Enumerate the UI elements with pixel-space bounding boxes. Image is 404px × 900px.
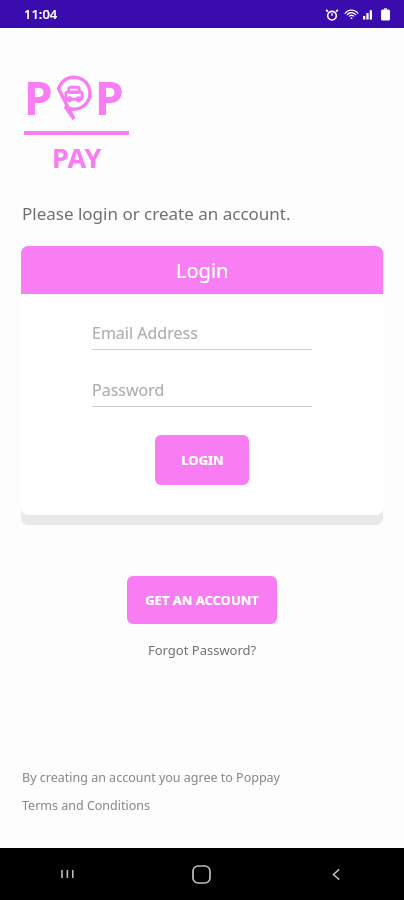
staticText: P — [95, 66, 124, 129]
button[interactable]: Forgot Password? — [140, 637, 265, 663]
staticText: P — [24, 66, 53, 129]
staticText: Terms and Conditions — [22, 797, 151, 814]
staticText: By creating an account you agree to Popp… — [22, 769, 280, 786]
staticText: 11:04 — [24, 5, 58, 23]
staticText: GET AN ACCOUNT — [145, 591, 259, 609]
staticText: Login — [176, 257, 229, 284]
button[interactable]: Recent apps — [0, 848, 134, 900]
button[interactable]: GET AN ACCOUNT — [127, 576, 277, 624]
button[interactable]: Email Address — [92, 322, 312, 350]
staticText: Email Address — [92, 322, 198, 344]
button[interactable]: Back — [269, 848, 404, 900]
button[interactable]: Password — [92, 379, 312, 407]
staticText: LOGIN — [181, 451, 224, 469]
staticText: PAY — [52, 139, 102, 176]
staticText: Password — [92, 379, 165, 401]
staticText: Forgot Password? — [148, 641, 257, 659]
staticText: Please login or create an account. — [22, 202, 291, 225]
button[interactable]: Home — [134, 848, 269, 900]
button[interactable]: LOGIN — [155, 435, 249, 485]
